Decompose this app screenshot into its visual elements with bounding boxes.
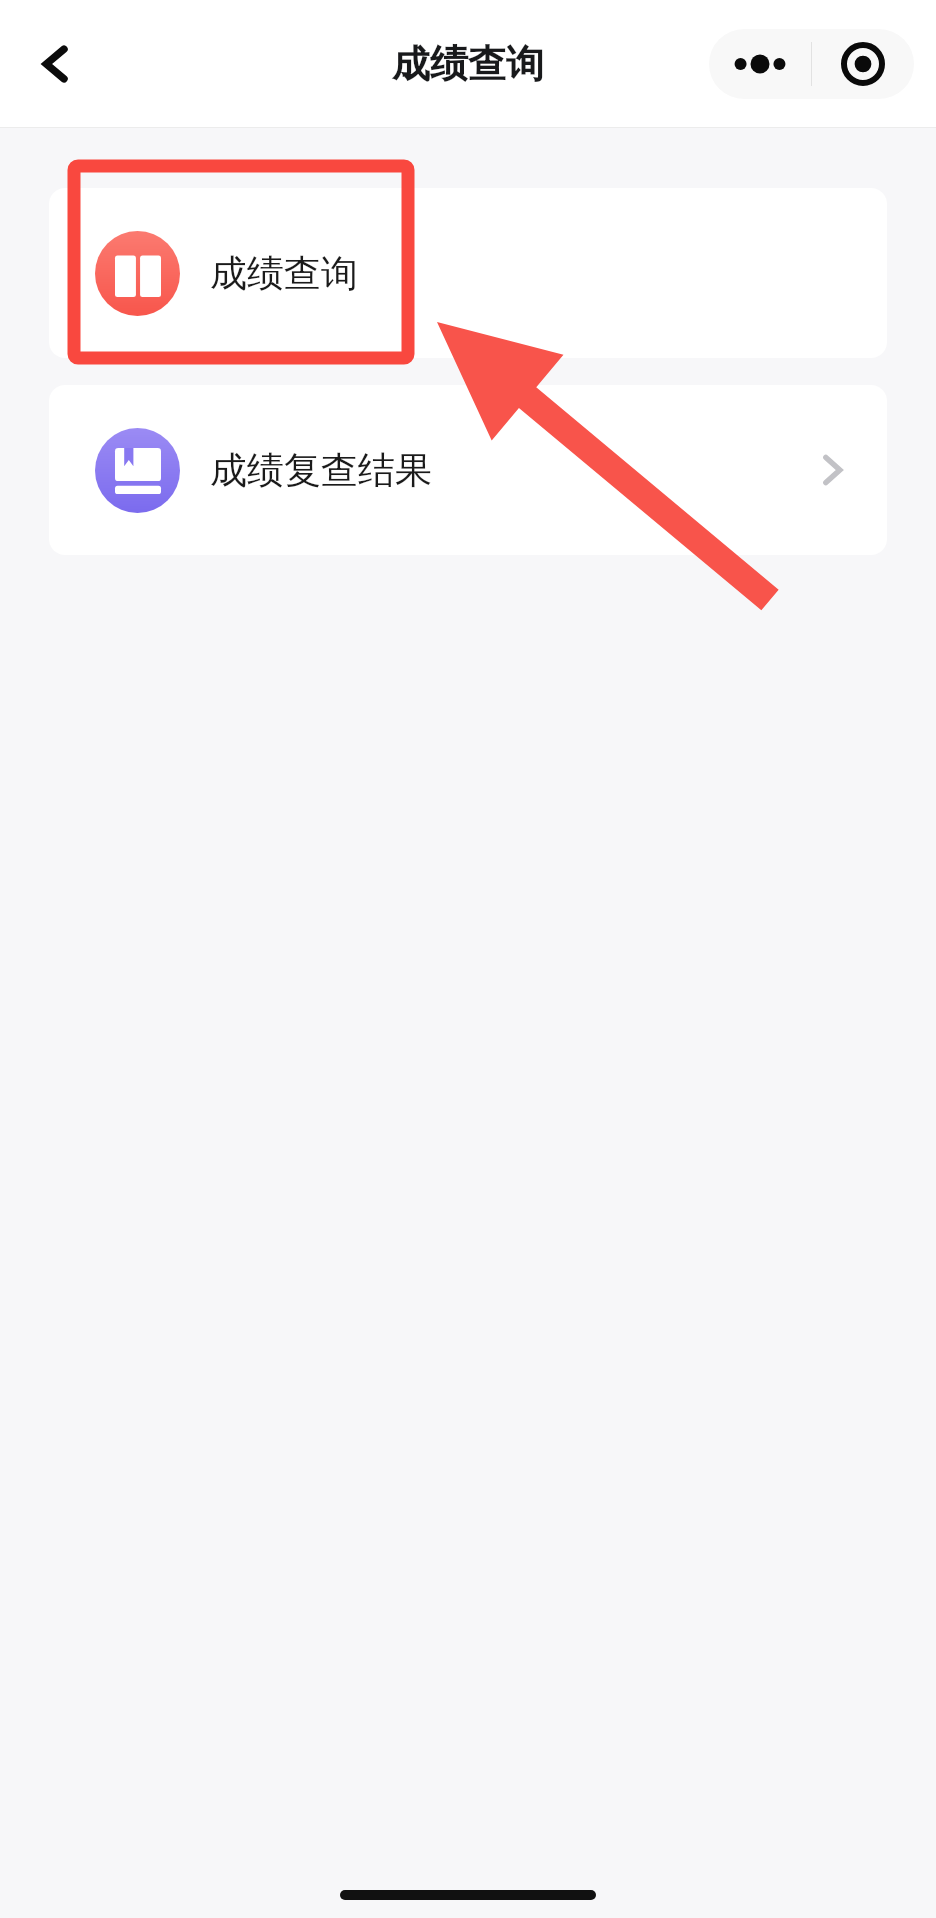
button[interactable]: More xyxy=(709,29,811,99)
button[interactable]: Close xyxy=(812,29,914,99)
staticText: 成绩查询 xyxy=(392,40,544,88)
button[interactable]: 成绩查询 xyxy=(49,188,887,358)
staticText: 成绩复查结果 xyxy=(210,447,432,494)
staticText: 成绩查询 xyxy=(210,250,358,297)
button[interactable]: Back xyxy=(20,28,92,100)
button[interactable]: 成绩复查结果 xyxy=(49,385,887,555)
